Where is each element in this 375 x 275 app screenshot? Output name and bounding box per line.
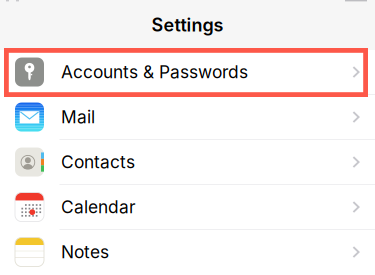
button[interactable]: Notes: [0, 230, 375, 275]
staticText: Notes: [61, 242, 109, 263]
staticText: Calendar: [61, 197, 136, 218]
staticText: Contacts: [61, 152, 135, 173]
staticText: Accounts & Passwords: [61, 62, 248, 83]
staticText: Settings: [151, 14, 223, 36]
button[interactable]: Mail: [0, 95, 375, 140]
staticText: Mail: [61, 107, 95, 128]
button[interactable]: Contacts: [0, 140, 375, 185]
button[interactable]: Accounts & Passwords: [0, 50, 375, 95]
button[interactable]: Calendar: [0, 185, 375, 230]
